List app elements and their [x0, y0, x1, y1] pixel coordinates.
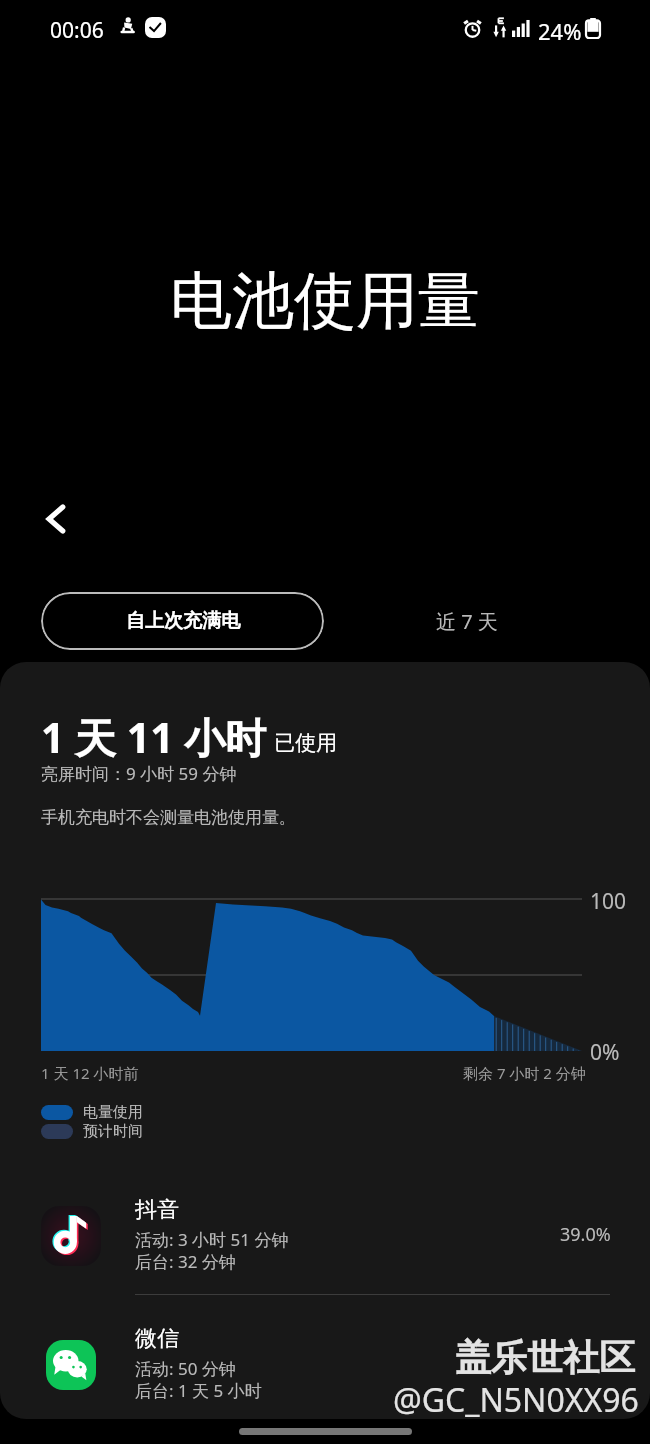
staticText: 已使用 [274, 730, 337, 756]
staticText: 活动: 50 分钟 [135, 1357, 236, 1380]
staticText: 微信 [135, 1325, 179, 1353]
button[interactable]: 自上次充满电 [41, 592, 324, 650]
staticText: 24% [538, 16, 582, 46]
button[interactable]: 抖音 [0, 1189, 650, 1293]
staticText: 预计时间 [83, 1122, 143, 1141]
button[interactable]: 微信 [0, 1318, 650, 1419]
staticText: 抖音 [135, 1196, 179, 1224]
staticText: 100 [590, 887, 627, 916]
button[interactable]: Back [30, 493, 82, 545]
staticText: 盖乐世社区 [455, 1335, 635, 1380]
staticText: @GC_N5N0XX96 [393, 1378, 639, 1422]
staticText: 亮屏时间：9 小时 59 分钟 [41, 762, 237, 785]
staticText: 0% [590, 1038, 620, 1067]
staticText: 00:06 [50, 16, 104, 45]
staticText: 后台: 32 分钟 [135, 1250, 236, 1273]
button[interactable]: 近 7 天 [414, 592, 520, 650]
staticText: 1 天 11 小时 [41, 709, 267, 765]
staticText: 自上次充满电 [126, 609, 240, 633]
staticText: 1 天 12 小时前 [41, 1063, 139, 1083]
staticText: 活动: 3 小时 51 分钟 [135, 1228, 289, 1251]
staticText: 39.0% [560, 1222, 611, 1247]
staticText: 电量使用 [83, 1103, 143, 1122]
staticText: 盖乐世社区 [457, 1337, 637, 1382]
staticText: 后台: 1 天 5 小时 [135, 1379, 262, 1402]
staticText: 近 7 天 [436, 608, 498, 635]
staticText: 剩余 7 小时 2 分钟 [463, 1063, 586, 1083]
staticText: 电池使用量 [0, 262, 650, 340]
staticText: 手机充电时不会测量电池使用量。 [41, 807, 296, 828]
staticText: @GC_N5N0XX96 [395, 1380, 641, 1424]
